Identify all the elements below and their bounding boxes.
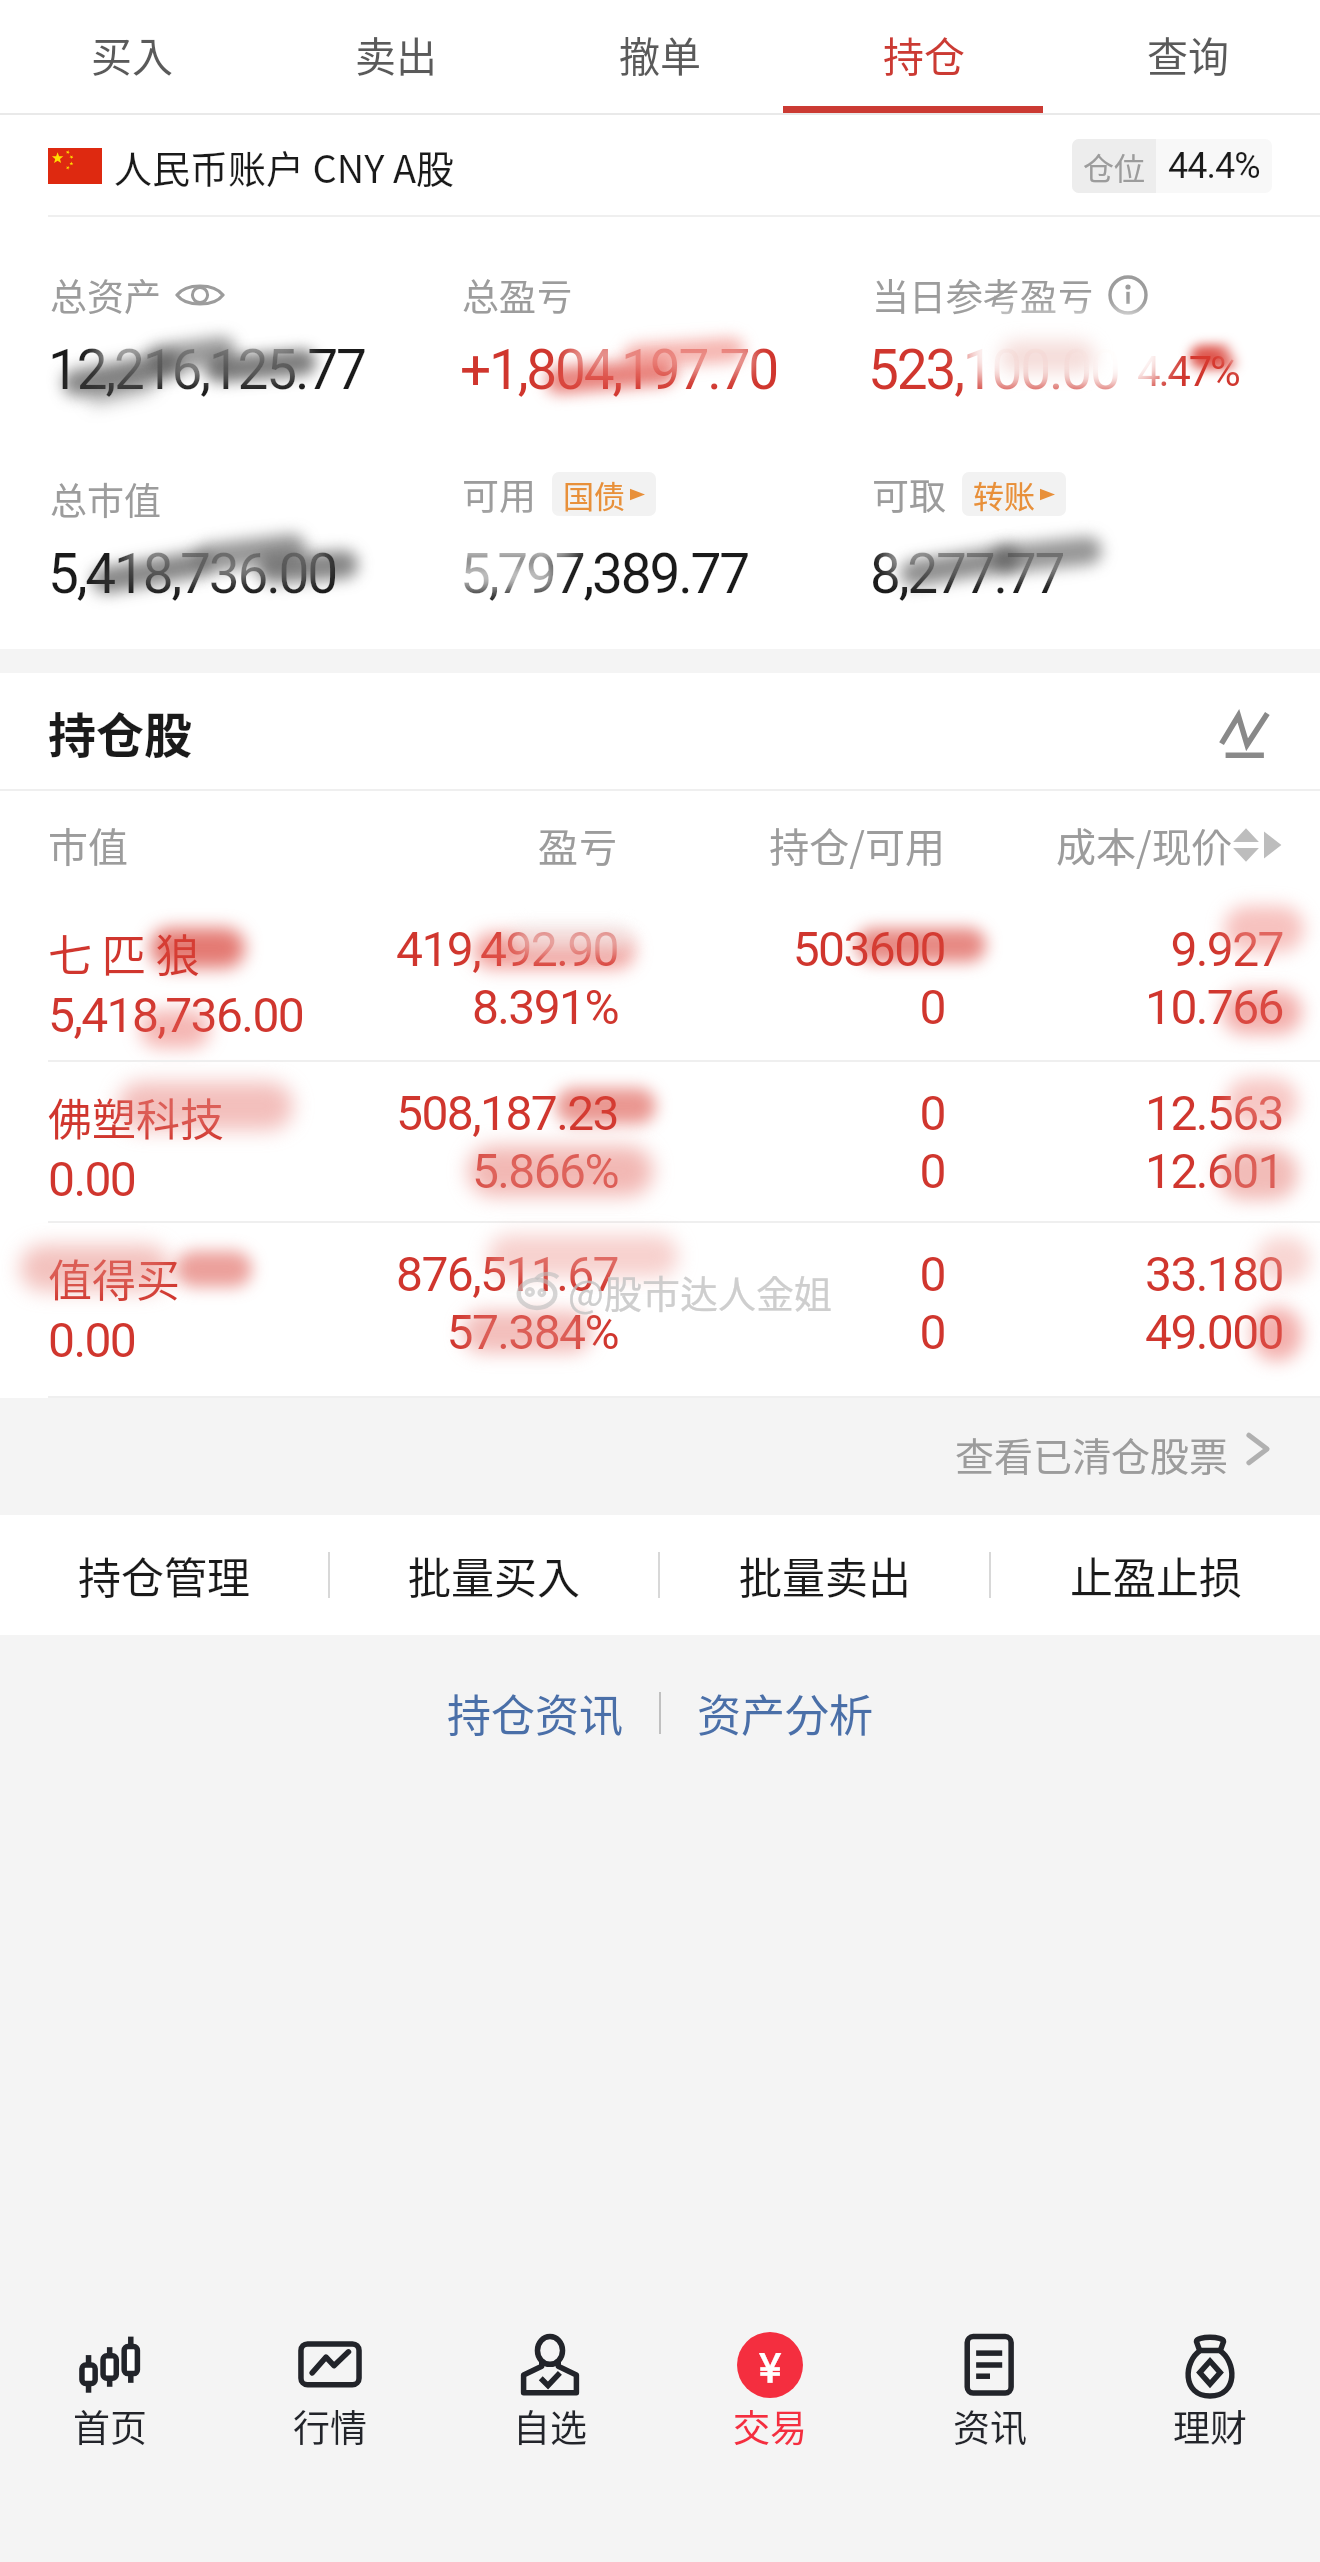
button[interactable]: 持仓: [792, 0, 1056, 107]
staticText: 0: [919, 1246, 945, 1302]
staticText: 值得买: [48, 1246, 180, 1310]
button[interactable]: 自选: [440, 2332, 660, 2562]
staticText: 行情: [293, 2399, 367, 2453]
button[interactable]: 资产分析: [661, 1675, 887, 1751]
staticText: 0: [919, 1143, 945, 1199]
staticText: 10.766: [1145, 979, 1283, 1035]
staticText: 止盈止损: [1070, 1544, 1242, 1606]
button[interactable]: 佛塑科技: [0, 1062, 1320, 1223]
staticText: 资讯: [953, 2399, 1027, 2453]
button[interactable]: 仓位: [1072, 139, 1272, 193]
staticText: 0: [919, 1085, 945, 1141]
staticText: 876,511.67: [396, 1246, 618, 1302]
staticText: 批量卖出: [739, 1544, 911, 1606]
staticText: 持仓管理: [78, 1544, 250, 1606]
staticText: 人民币账户 CNY A股: [114, 139, 455, 194]
staticText: ¥: [759, 2336, 782, 2394]
button[interactable]: 值得买: [0, 1223, 1320, 1398]
staticText: 33.180: [1145, 1246, 1283, 1302]
staticText: 0: [919, 979, 945, 1035]
staticText: 总盈亏: [462, 268, 573, 322]
button[interactable]: 查看已清仓股票: [0, 1398, 1320, 1515]
staticText: 可取: [872, 467, 946, 521]
button[interactable]: 批量买入: [330, 1515, 658, 1635]
staticText: 508,187.23: [396, 1085, 618, 1141]
button[interactable]: 人民币账户 CNY A股: [0, 115, 1320, 217]
staticText: 总市值: [50, 472, 161, 526]
staticText: +1,804,197.70: [460, 338, 777, 402]
staticText: 5,418,736.00: [48, 987, 304, 1043]
staticText: 5,418,736.00: [48, 542, 336, 606]
staticText: 持仓资讯: [447, 1681, 623, 1745]
staticText: 佛塑科技: [48, 1085, 224, 1149]
staticText: 12.563: [1145, 1085, 1283, 1141]
staticText: 当日参考盈亏: [872, 268, 1094, 322]
button[interactable]: 国债: [552, 472, 656, 516]
staticText: 49.000: [1145, 1304, 1283, 1360]
button[interactable]: 首页: [0, 2332, 220, 2562]
staticText: 8.391%: [471, 979, 618, 1035]
staticText: 8,277.77: [870, 542, 1064, 606]
staticText: 持仓/可用: [618, 816, 945, 874]
staticText: 批量买入: [408, 1544, 580, 1606]
staticText: 交易: [733, 2399, 807, 2453]
staticText: 总资产: [50, 268, 161, 322]
staticText: 成本/现价: [1056, 816, 1232, 874]
button[interactable]: 转账: [962, 472, 1066, 516]
staticText: 盈亏: [333, 816, 618, 874]
button[interactable]: 买入: [0, 0, 264, 107]
button[interactable]: Chart view: [1214, 703, 1272, 761]
staticText: 理财: [1173, 2399, 1247, 2453]
button[interactable]: ¥: [660, 2332, 880, 2562]
button[interactable]: 持仓资讯: [433, 1675, 659, 1751]
staticText: 0.00: [48, 1312, 136, 1368]
button[interactable]: 持仓管理: [0, 1515, 328, 1635]
staticText: 仓位: [1083, 144, 1145, 189]
staticText: 撤单: [619, 24, 701, 83]
staticText: 买入: [91, 24, 173, 83]
staticText: 自选: [513, 2399, 587, 2453]
button[interactable]: 行情: [220, 2332, 440, 2562]
staticText: 0.00: [48, 1151, 136, 1207]
staticText: 转账: [973, 472, 1035, 516]
staticText: 523,100.00: [868, 338, 1119, 402]
staticText: 查询: [1147, 24, 1229, 83]
staticText: 卖出: [355, 24, 437, 83]
button[interactable]: 七 匹 狼: [0, 898, 1320, 1062]
staticText: 9.927: [1170, 921, 1283, 977]
staticText: 可用: [462, 467, 536, 521]
staticText: 5,797,389.77: [460, 542, 748, 606]
staticText: 419,492.90: [396, 921, 618, 977]
staticText: @股市达人金姐: [568, 1264, 832, 1319]
staticText: 持仓股: [48, 697, 193, 767]
staticText: 0: [919, 1304, 945, 1360]
button[interactable]: 卖出: [264, 0, 528, 107]
button[interactable]: 查询: [1056, 0, 1320, 107]
staticText: 12.601: [1145, 1143, 1283, 1199]
staticText: 市值: [48, 816, 333, 874]
staticText: 4.47%: [1137, 347, 1239, 396]
staticText: 12,216,125.77: [48, 338, 365, 402]
staticText: 资产分析: [697, 1681, 873, 1745]
staticText: 5.866%: [471, 1143, 618, 1199]
staticText: 国债: [563, 472, 625, 516]
staticText: 七 匹 狼: [48, 921, 200, 985]
button[interactable]: 资讯: [880, 2332, 1100, 2562]
staticText: 44.4%: [1168, 145, 1260, 187]
staticText: 57.384%: [446, 1304, 618, 1360]
staticText: 首页: [73, 2399, 147, 2453]
button[interactable]: 理财: [1100, 2332, 1320, 2562]
staticText: 持仓: [883, 24, 965, 83]
staticText: 503600: [792, 921, 945, 977]
button[interactable]: 撤单: [528, 0, 792, 107]
button[interactable]: 止盈止损: [991, 1515, 1320, 1635]
staticText: 查看已清仓股票: [955, 1426, 1229, 1482]
button[interactable]: 批量卖出: [660, 1515, 989, 1635]
